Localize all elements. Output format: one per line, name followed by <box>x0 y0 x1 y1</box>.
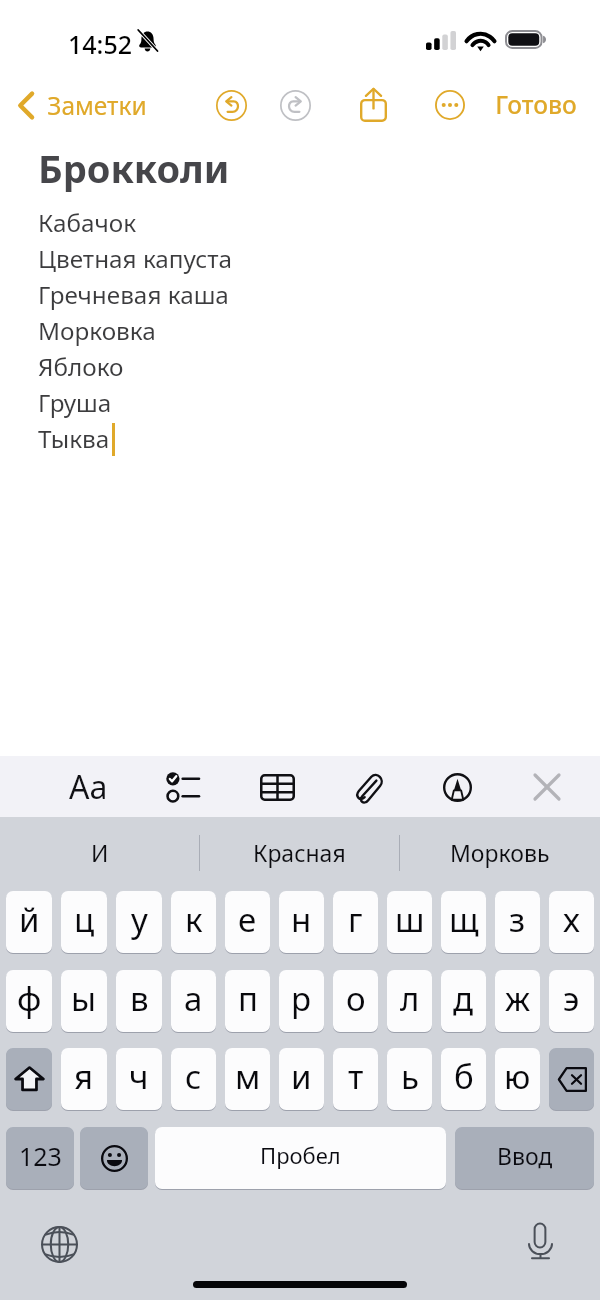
button[interactable]: с <box>171 1048 216 1111</box>
staticText: Гречневая каша <box>38 278 229 311</box>
staticText: е <box>238 897 257 942</box>
button[interactable]: в <box>116 970 162 1033</box>
button[interactable]: п <box>225 970 270 1033</box>
button[interactable]: Checklist <box>155 760 209 814</box>
button[interactable]: э <box>549 970 594 1033</box>
button[interactable]: Заметки <box>18 89 147 121</box>
staticText: Яблоко <box>38 350 124 383</box>
button[interactable]: и <box>279 1048 324 1111</box>
staticText: к <box>185 897 203 942</box>
button[interactable]: х <box>549 891 594 954</box>
button[interactable]: Close <box>520 760 574 814</box>
button[interactable]: Undo <box>208 82 254 128</box>
button[interactable]: у <box>116 891 162 954</box>
staticText: И <box>91 837 109 868</box>
button[interactable]: р <box>279 970 324 1033</box>
button[interactable]: а <box>171 970 216 1033</box>
staticText: ч <box>129 1054 149 1099</box>
staticText: Груша <box>38 386 112 419</box>
button[interactable]: Redo <box>272 82 318 128</box>
button[interactable]: я <box>61 1048 107 1111</box>
button[interactable]: Ввод <box>455 1127 594 1190</box>
staticText: р <box>291 976 312 1021</box>
button[interactable]: Готово <box>495 87 577 121</box>
staticText: Брокколи <box>38 142 230 194</box>
button[interactable]: л <box>387 970 432 1033</box>
staticText: д <box>453 976 474 1021</box>
staticText: Кабачок <box>38 206 137 239</box>
staticText: Заметки <box>47 89 147 121</box>
button[interactable]: Красная <box>214 817 384 877</box>
button[interactable]: Морковь <box>415 817 585 877</box>
button[interactable]: Backspace <box>549 1048 594 1111</box>
button[interactable]: More <box>427 82 473 128</box>
staticText: и <box>291 1054 312 1099</box>
button[interactable]: н <box>279 891 324 954</box>
button[interactable]: Share <box>350 82 396 128</box>
staticText: Ввод <box>497 1140 553 1171</box>
staticText: щ <box>449 897 479 942</box>
staticText: ж <box>505 976 531 1021</box>
button[interactable]: м <box>225 1048 270 1111</box>
button[interactable]: ю <box>495 1048 540 1111</box>
staticText: Красная <box>253 837 346 868</box>
button[interactable]: й <box>6 891 52 954</box>
staticText: Готово <box>495 88 577 121</box>
button[interactable]: ч <box>116 1048 162 1111</box>
button[interactable]: ш <box>387 891 432 954</box>
staticText: ш <box>395 897 425 942</box>
button[interactable]: о <box>333 970 378 1033</box>
staticText: Цветная капуста <box>38 242 232 275</box>
staticText: ф <box>17 976 42 1021</box>
button[interactable]: Emoji <box>80 1127 148 1190</box>
button[interactable]: И <box>15 817 185 877</box>
staticText: Тыква <box>38 422 110 455</box>
staticText: Морковь <box>450 837 550 868</box>
button[interactable]: ы <box>61 970 107 1033</box>
staticText: т <box>348 1054 364 1099</box>
staticText: с <box>185 1054 202 1099</box>
button[interactable]: б <box>441 1048 486 1111</box>
staticText: о <box>346 976 366 1021</box>
button[interactable]: Пробел <box>155 1127 446 1190</box>
staticText: л <box>400 976 420 1021</box>
staticText: 123 <box>19 1139 62 1173</box>
staticText: ц <box>74 897 95 942</box>
button[interactable]: ц <box>61 891 107 954</box>
button[interactable]: Aa <box>60 760 116 814</box>
staticText: Морковка <box>38 314 156 347</box>
staticText: я <box>74 1054 94 1099</box>
button[interactable]: Table <box>250 760 304 814</box>
staticText: ю <box>504 1054 531 1099</box>
staticText: у <box>131 897 148 942</box>
staticText: Пробел <box>260 1140 341 1170</box>
staticText: г <box>348 897 363 942</box>
button[interactable]: д <box>441 970 486 1033</box>
staticText: х <box>563 897 580 942</box>
staticText: э <box>563 976 580 1021</box>
button[interactable]: ф <box>6 970 52 1033</box>
button[interactable]: Switch keyboard <box>37 1222 82 1267</box>
button[interactable]: е <box>225 891 270 954</box>
staticText: в <box>130 976 149 1021</box>
button[interactable]: к <box>171 891 216 954</box>
staticText: ы <box>71 976 97 1021</box>
button[interactable]: Markup <box>430 760 484 814</box>
staticText: а <box>184 976 203 1021</box>
button[interactable]: т <box>333 1048 378 1111</box>
staticText: м <box>235 1054 261 1099</box>
button[interactable]: 123 <box>6 1127 74 1190</box>
button[interactable]: г <box>333 891 378 954</box>
button[interactable]: Attach <box>341 760 395 814</box>
staticText: з <box>509 897 526 942</box>
button[interactable]: Dictation <box>518 1219 563 1264</box>
staticText: б <box>454 1054 474 1099</box>
button[interactable]: Shift <box>6 1048 52 1111</box>
staticText: 14:52 <box>68 27 133 61</box>
staticText: Aa <box>69 765 108 809</box>
button[interactable]: ж <box>495 970 540 1033</box>
button[interactable]: щ <box>441 891 486 954</box>
staticText: ь <box>401 1054 419 1099</box>
button[interactable]: з <box>495 891 540 954</box>
button[interactable]: ь <box>387 1048 432 1111</box>
